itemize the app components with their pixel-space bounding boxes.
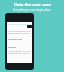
- staticText: Lorem ipsum dolor sit amet consectetur: [8, 30, 33, 33]
- staticText: adipiscing elit sed do eiusmod: [8, 52, 33, 55]
- staticText: Details: [8, 45, 17, 48]
- button[interactable]: Sign in: [27, 25, 32, 28]
- staticText: Data the user sees: [14, 2, 51, 7]
- staticText: Section one: [8, 37, 22, 40]
- staticText: Lorem ipsum dolor sit amet consectetur: [8, 50, 33, 53]
- staticText: Everything in one simple place: [13, 8, 51, 12]
- staticText: adipiscing elit sed do eiusmod tempor: [8, 32, 33, 35]
